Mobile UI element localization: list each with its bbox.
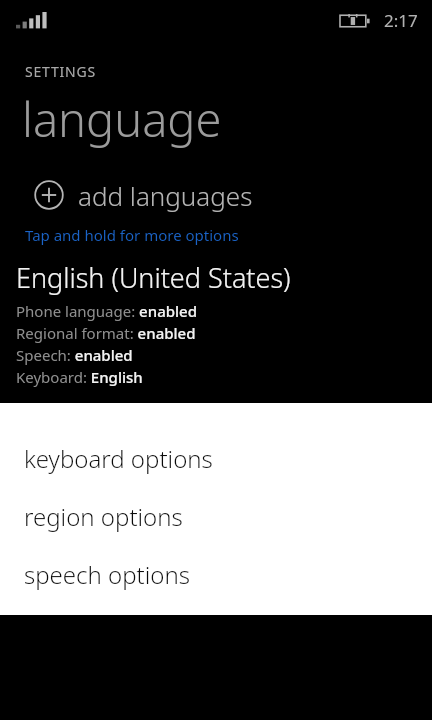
staticText: Keyboard: English bbox=[16, 367, 143, 387]
staticText: Regional format: enabled bbox=[16, 323, 196, 343]
staticText: keyboard options bbox=[24, 442, 213, 475]
staticText: add languages bbox=[78, 178, 253, 213]
button[interactable]: keyboard options bbox=[0, 429, 432, 487]
staticText: region options bbox=[24, 500, 183, 533]
staticText: language bbox=[22, 87, 222, 151]
staticText: speech options bbox=[24, 558, 190, 591]
staticText: Phone language: enabled bbox=[16, 301, 197, 321]
button[interactable]: speech options bbox=[0, 545, 432, 603]
staticText: Speech: enabled bbox=[16, 345, 133, 365]
staticText: SETTINGS bbox=[25, 62, 96, 81]
button[interactable]: region options bbox=[0, 487, 432, 545]
staticText: English (United States) bbox=[16, 259, 291, 296]
button[interactable]: English (United States) bbox=[0, 259, 432, 387]
button[interactable]: add languages bbox=[0, 173, 432, 217]
staticText: 2:17 bbox=[384, 9, 418, 32]
staticText: Tap and hold for more options bbox=[25, 225, 239, 245]
